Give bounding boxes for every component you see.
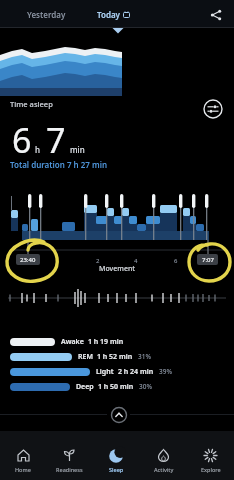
button[interactable]: Today — [90, 3, 136, 25]
staticText: REM — [78, 352, 93, 362]
button[interactable]: Awake — [10, 334, 124, 349]
staticText: 30% — [139, 382, 152, 391]
staticText: 1 h 19 min — [88, 337, 124, 347]
staticText: Time asleep — [10, 99, 53, 109]
staticText: 39% — [159, 367, 172, 376]
staticText: 1 h 50 min — [98, 382, 134, 392]
button[interactable]: Yesterday — [18, 3, 74, 25]
button[interactable]: Sleep — [93, 431, 140, 480]
staticText: Deep — [76, 382, 94, 392]
staticText: Explore — [201, 466, 221, 473]
staticText: 1 h 52 min — [97, 352, 133, 362]
staticText: Awake — [61, 337, 84, 347]
button[interactable]: Activity — [140, 431, 187, 480]
button[interactable]: Explore — [187, 431, 234, 480]
staticText: 31% — [138, 352, 151, 361]
button[interactable]: Home — [0, 431, 46, 480]
staticText: Sleep — [109, 466, 124, 473]
button[interactable] — [204, 3, 228, 27]
staticText: Readiness — [56, 466, 83, 473]
staticText: min — [70, 144, 85, 155]
staticText: 23:40 — [20, 256, 36, 264]
button[interactable]: Light — [10, 364, 172, 379]
staticText: h — [35, 144, 41, 155]
staticText: 2 — [96, 257, 100, 265]
staticText: Today — [97, 9, 120, 20]
staticText: 7:07 — [202, 256, 214, 264]
button[interactable]: Readiness — [46, 431, 93, 480]
staticText: 6 — [174, 257, 178, 265]
button[interactable] — [200, 96, 226, 122]
staticText: Home — [15, 466, 31, 473]
staticText: 7 — [46, 117, 66, 163]
staticText: 4 — [134, 257, 138, 265]
button[interactable]: Deep — [10, 379, 152, 394]
staticText: Total duration 7 h 27 min — [10, 159, 108, 170]
staticText: Movement — [99, 264, 135, 274]
staticText: Yesterday — [27, 9, 66, 20]
button[interactable]: REM — [10, 349, 151, 364]
button[interactable] — [107, 403, 130, 426]
staticText: Light — [96, 367, 114, 377]
staticText: 2 h 24 min — [118, 367, 154, 377]
staticText: Activity — [154, 466, 174, 473]
staticText: 6 — [12, 117, 32, 163]
